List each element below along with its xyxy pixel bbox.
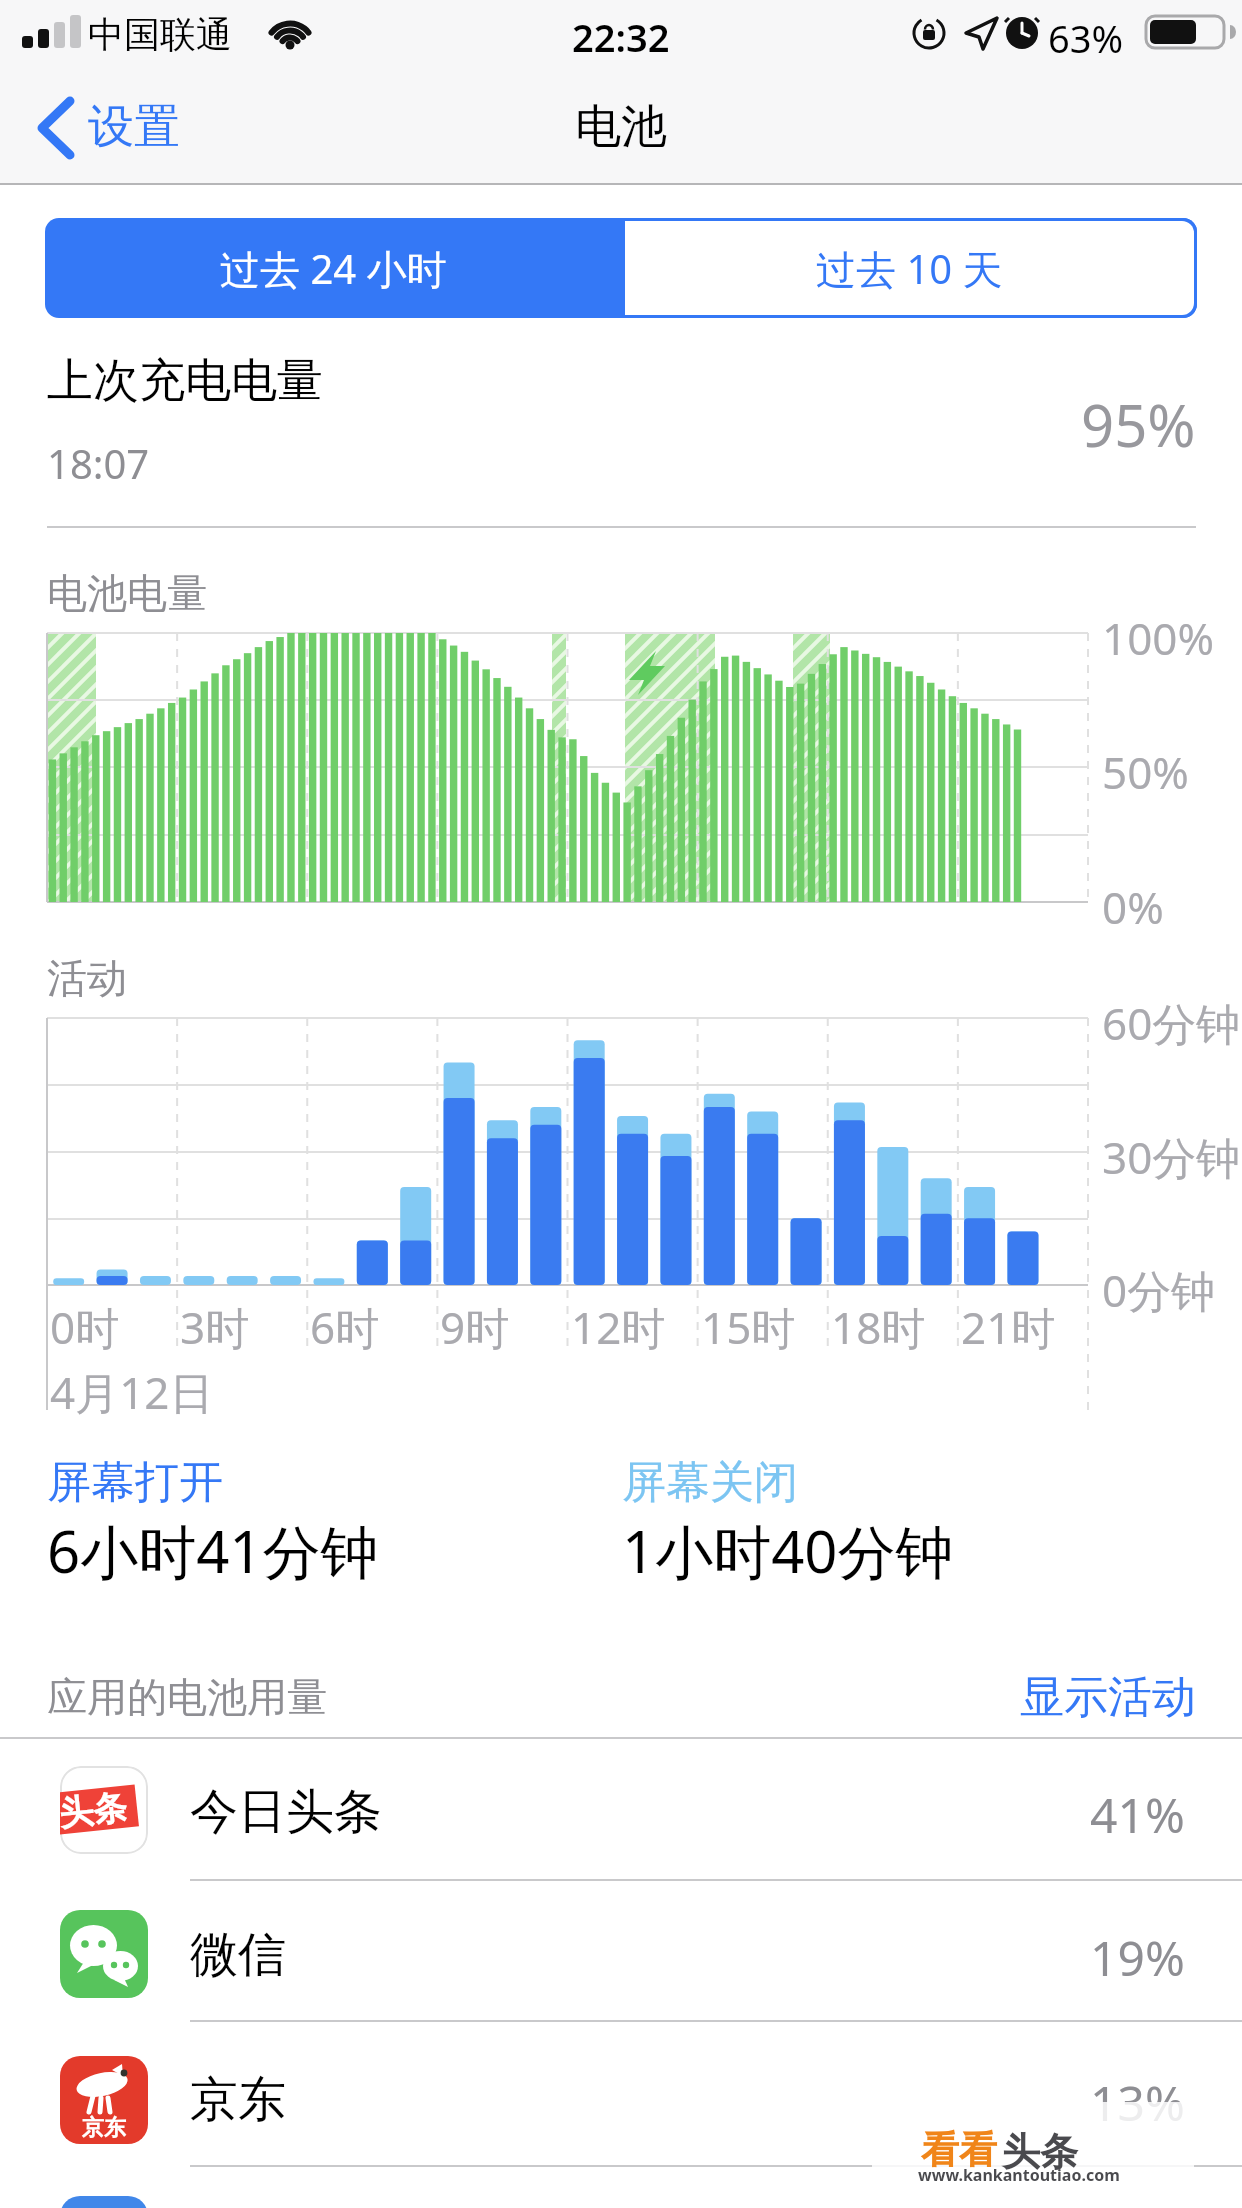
staticText: 看看 [921,2126,997,2174]
staticText: 3时 [180,1297,250,1357]
staticText: 屏幕关闭 [622,1455,798,1510]
staticText: 60分钟 [1102,993,1241,1053]
button[interactable] [0,2021,1242,2163]
staticText: 上次充电电量 [47,352,323,410]
staticText: 6时 [310,1297,380,1357]
button[interactable] [0,1738,1242,1880]
staticText: 1小时40分钟 [622,1511,954,1590]
staticText: 今日头条 [190,1782,382,1842]
staticText: 100% [1102,608,1215,668]
staticText: 屏幕打开 [47,1455,223,1510]
staticText: 6小时41分钟 [47,1511,379,1590]
button[interactable]: 设置 [30,90,230,166]
staticText: 0% [1102,877,1164,937]
staticText: 95% [1081,385,1196,464]
staticText: 4月12日 [50,1362,214,1422]
staticText: 设置 [88,98,180,156]
staticText: 30分钟 [1102,1127,1241,1187]
button[interactable]: 过去 10 天 [625,221,1194,315]
button[interactable] [0,1880,1242,2022]
button[interactable]: 显示活动 [1000,1662,1220,1732]
staticText: www.kankantoutiao.com [918,2164,1120,2186]
staticText: 19% [1090,1925,1185,1990]
button[interactable]: 过去 24 小时 [45,218,622,318]
staticText: 过去 10 天 [816,241,1003,296]
staticText: 12时 [571,1297,666,1357]
staticText: 电池电量 [47,568,207,618]
staticText: 显示活动 [1020,1670,1196,1725]
staticText: 0时 [50,1297,120,1357]
staticText: 微信 [190,1925,286,1985]
staticText: 中国联通 [88,12,232,57]
staticText: 21时 [961,1297,1056,1357]
staticText: 18时 [831,1297,926,1357]
staticText: 头条 [60,1786,129,1834]
staticText: 9时 [440,1297,510,1357]
staticText: 头条 [1002,2128,1078,2176]
staticText: 活动 [47,953,127,1003]
staticText: 15时 [701,1297,796,1357]
staticText: 京东 [190,2070,286,2130]
staticText: 应用的电池用量 [47,1672,327,1722]
staticText: 电池 [575,98,667,156]
staticText: 63% [1048,12,1124,64]
staticText: 0分钟 [1102,1260,1216,1320]
staticText: 京东 [82,2114,126,2142]
staticText: 50% [1102,742,1189,802]
staticText: 13% [1090,2070,1185,2135]
staticText: 18:07 [47,436,150,490]
staticText: 22:32 [572,11,670,63]
staticText: 过去 24 小时 [220,241,447,296]
staticText: 41% [1090,1782,1185,1847]
